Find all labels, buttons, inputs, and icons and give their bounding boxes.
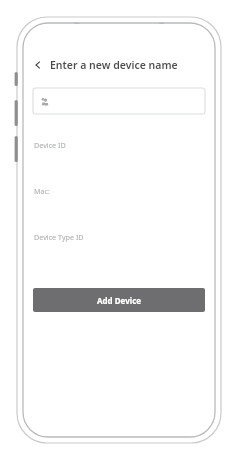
- staticText: Device ID: [34, 140, 66, 150]
- staticText: Mac:: [34, 186, 50, 196]
- staticText: Device Type ID: [34, 232, 84, 242]
- staticText: Enter a new device name: [50, 58, 178, 72]
- button[interactable]: Back: [30, 57, 46, 73]
- button[interactable]: [33, 88, 205, 114]
- staticText: Add Device: [97, 295, 142, 306]
- button[interactable]: Add Device: [33, 288, 205, 312]
